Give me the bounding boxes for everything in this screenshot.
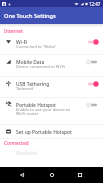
staticText: Wi-Fi — [16, 39, 28, 46]
staticText: 12:47 — [89, 1, 101, 7]
staticText: Set up Portable Hotspot — [16, 129, 72, 136]
staticText: Connected to "Richa" — [16, 44, 57, 50]
button[interactable]: Bluetooth — [16, 147, 103, 158]
staticText: Enable to use your device as Wi-Fi route… — [16, 107, 76, 116]
staticText: Connected — [4, 140, 29, 147]
staticText: Portable Hotspot — [16, 102, 56, 109]
button[interactable]: Home — [41, 167, 63, 183]
staticText: Mobile Data — [16, 59, 45, 66]
button[interactable]: Back — [11, 167, 33, 183]
button[interactable]: Recents — [69, 167, 91, 183]
button[interactable]: Mobile Data — [0, 56, 103, 77]
button[interactable]: USB Tethering — [0, 78, 103, 98]
staticText: Internet — [4, 28, 23, 35]
button[interactable]: Portable Hotspot — [0, 99, 103, 125]
staticText: USB Tethering — [16, 81, 50, 88]
staticText: Bluetooth — [16, 150, 38, 156]
staticText: Device connected to Wi-Fi — [16, 64, 66, 70]
button[interactable]: Wi-Fi — [0, 36, 103, 56]
staticText: One Touch Settings — [4, 12, 56, 20]
button[interactable]: Set up Portable Hotspot — [0, 126, 103, 140]
staticText: Tethered — [16, 86, 34, 92]
